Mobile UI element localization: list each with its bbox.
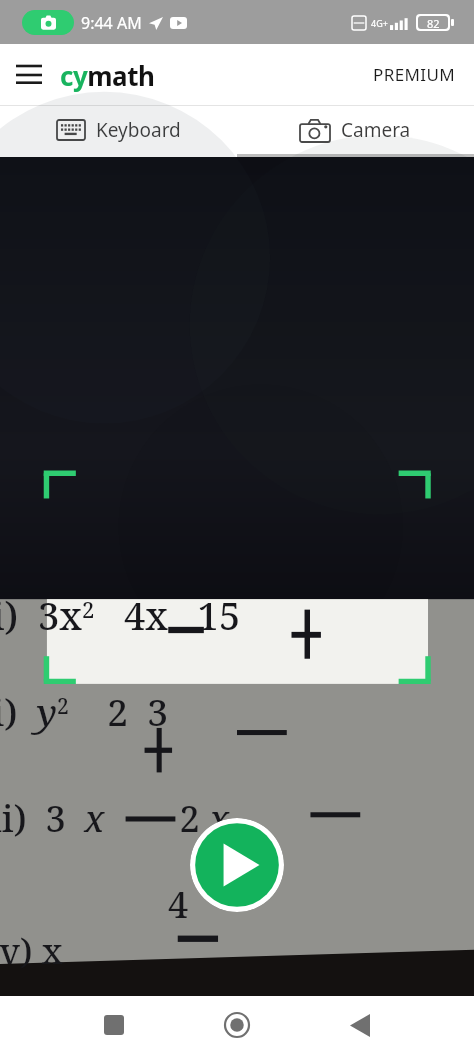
staticText: i) y2 2 3 <box>0 686 168 736</box>
staticText: Camera <box>341 117 411 143</box>
staticText: PREMIUM <box>373 63 456 86</box>
button[interactable]: Solve <box>190 818 284 912</box>
button[interactable]: Back <box>333 998 387 1052</box>
button[interactable]: Recent apps <box>87 998 141 1052</box>
staticText: 4 <box>168 880 189 929</box>
staticText: 4G+ <box>371 17 388 29</box>
staticText: iv) x <box>0 927 63 975</box>
staticText: 9:44 AM <box>81 12 142 34</box>
staticText: i) 3x2 4x 15 <box>0 589 241 641</box>
button[interactable]: PREMIUM <box>355 53 474 96</box>
staticText: ii) 3 x 2 x <box>0 794 230 843</box>
button[interactable]: Open navigation menu <box>0 46 58 104</box>
button[interactable]: Keyboard <box>0 106 237 154</box>
button[interactable]: Home <box>210 998 264 1052</box>
button[interactable]: Camera <box>237 106 474 154</box>
staticText: cymath <box>60 58 155 93</box>
button[interactable]: cymath <box>58 58 157 93</box>
staticText: 82 <box>427 16 440 29</box>
staticText: Keyboard <box>96 117 181 143</box>
